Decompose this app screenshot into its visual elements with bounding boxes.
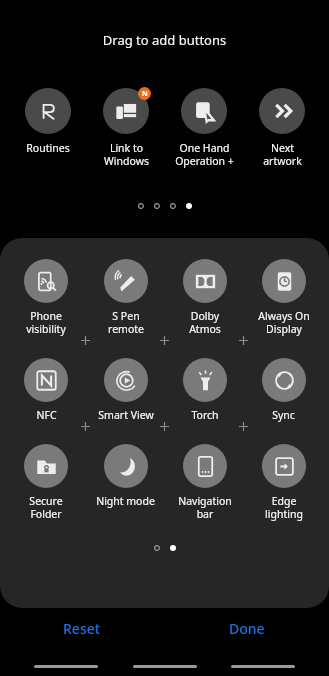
button[interactable]: N bbox=[87, 88, 165, 168]
staticText: Smart View bbox=[98, 408, 154, 422]
button[interactable]: Dolby Atmos bbox=[165, 259, 244, 336]
other: Navigation bbox=[34, 665, 98, 668]
button[interactable]: Phone visibility bbox=[6, 259, 86, 336]
button[interactable]: One Hand Operation + bbox=[165, 88, 243, 168]
button[interactable]: Next artwork bbox=[243, 88, 321, 168]
staticText: Edge lighting bbox=[265, 494, 303, 521]
button[interactable]: Done bbox=[164, 606, 329, 650]
staticText: Dolby Atmos bbox=[189, 309, 221, 336]
staticText: Drag to add buttons bbox=[0, 31, 329, 49]
staticText: Always On Display bbox=[258, 309, 310, 336]
staticText: Secure Folder bbox=[29, 494, 63, 521]
button[interactable]: NFC bbox=[6, 358, 86, 422]
staticText: NFC bbox=[36, 408, 57, 422]
staticText: Navigation bar bbox=[178, 494, 232, 521]
staticText: One Hand Operation + bbox=[175, 141, 234, 168]
button[interactable]: Torch bbox=[165, 358, 244, 422]
other: Navigation bbox=[231, 665, 295, 668]
button[interactable]: Always On Display bbox=[244, 259, 323, 336]
button[interactable]: Edge lighting bbox=[244, 444, 323, 521]
staticText: Reset bbox=[63, 619, 101, 638]
button[interactable]: S Pen remote bbox=[86, 259, 165, 336]
staticText: N bbox=[142, 89, 148, 99]
staticText: Night mode bbox=[96, 494, 155, 508]
staticText: Next artwork bbox=[263, 141, 302, 168]
staticText: Torch bbox=[191, 408, 219, 422]
staticText: Sync bbox=[272, 408, 295, 422]
staticText: S Pen remote bbox=[108, 309, 144, 336]
staticText: Phone visibility bbox=[26, 309, 66, 336]
button[interactable]: Navigation bar bbox=[165, 444, 244, 521]
staticText: Routines bbox=[26, 141, 70, 155]
other: Navigation bbox=[133, 665, 197, 668]
button[interactable]: Sync bbox=[244, 358, 323, 422]
button[interactable]: Routines bbox=[8, 88, 87, 155]
button[interactable]: Smart View bbox=[86, 358, 165, 422]
button[interactable]: Reset bbox=[0, 606, 164, 650]
staticText: Done bbox=[229, 619, 265, 638]
button[interactable]: Secure Folder bbox=[6, 444, 86, 521]
staticText: Link to Windows bbox=[104, 141, 149, 168]
button[interactable]: Night mode bbox=[86, 444, 165, 508]
